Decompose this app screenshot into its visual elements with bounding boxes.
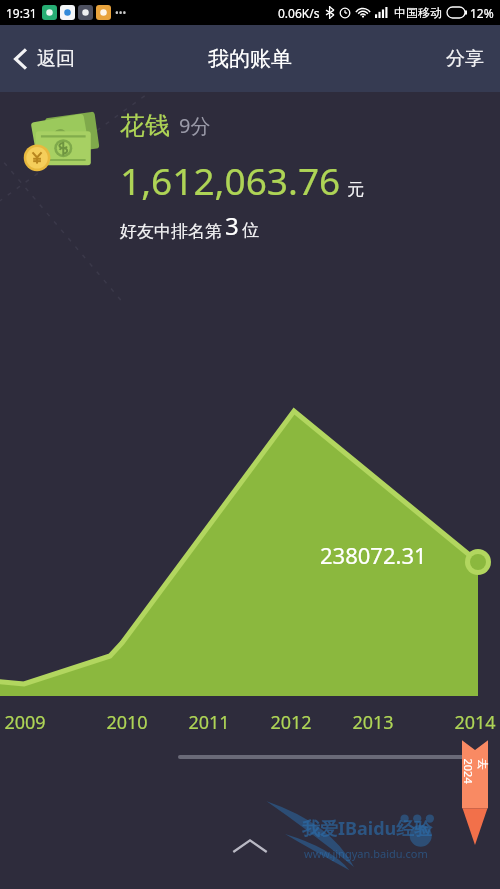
staticText: 238072.31 [320,540,427,570]
staticText: www.jingyan.baidu.com [304,846,428,861]
staticText: 好友中排名第 [120,221,222,242]
staticText: 我的账单 [208,46,292,72]
staticText: 2013 [352,710,394,735]
staticText: 19:31 [6,5,37,21]
staticText: 位 [242,220,259,241]
staticText: 返回 [37,47,75,71]
staticText: 分享 [446,47,484,71]
staticText: 0.06K/s [278,5,320,21]
staticText: 花钱 [120,110,170,141]
button[interactable]: 分享 [446,25,484,92]
staticText: ••• [115,6,127,20]
staticText: 中国移动 [394,5,442,20]
staticText: 2014 [454,710,496,735]
staticText: 2009 [4,710,46,735]
staticText: 3 [225,209,239,242]
staticText: 2010 [106,710,148,735]
staticText: 2012 [270,710,312,735]
staticText: 2011 [188,710,230,735]
staticText: 我爱IBaidu经验 [302,816,433,841]
button[interactable]: 去2024 [462,737,488,845]
staticText: 9分 [179,112,211,139]
staticText: 12% [470,5,494,21]
button[interactable]: Collapse [218,825,282,867]
button[interactable]: 返回 [14,25,75,92]
staticText: 元 [347,179,364,200]
staticText: 去2024 [460,758,489,784]
staticText: 1,612,063.76 [120,155,341,205]
